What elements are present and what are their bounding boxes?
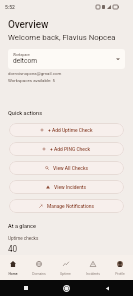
- staticText: Incidents: [86, 272, 100, 276]
- button[interactable]: Uptime: [52, 255, 79, 280]
- staticText: Uptime: [60, 272, 71, 276]
- button[interactable]: Back: [103, 284, 111, 292]
- staticText: dornvisnopcea@gmail.com: [8, 71, 62, 76]
- staticText: Home: [8, 272, 18, 276]
- button[interactable]: Home: [62, 284, 71, 293]
- staticText: Profile: [115, 272, 125, 276]
- button[interactable]: Incidents: [79, 255, 106, 280]
- staticText: Welcome back, Flavius Nopcea: [8, 33, 116, 42]
- button[interactable]: Recent apps: [22, 284, 30, 292]
- staticText: deltcom: [13, 57, 37, 65]
- button[interactable]: Profile: [106, 255, 133, 280]
- staticText: Uptime checks: [8, 236, 39, 241]
- button[interactable]: View Incidents: [9, 180, 124, 194]
- staticText: View All Checks: [53, 165, 88, 171]
- button[interactable]: Manage Notifications: [9, 199, 124, 213]
- button[interactable]: + Add Uptime Check: [9, 123, 124, 137]
- staticText: 40: [8, 244, 18, 254]
- staticText: + Add PING Check: [50, 146, 91, 152]
- staticText: Domains: [32, 272, 46, 276]
- staticText: + Add Uptime Check: [48, 127, 93, 133]
- button[interactable]: Domains: [26, 255, 52, 280]
- staticText: At a glance: [8, 223, 36, 230]
- staticText: Workspace: [13, 53, 30, 57]
- button[interactable]: Workspace: [8, 49, 125, 69]
- button[interactable]: + Add PING Check: [9, 142, 124, 156]
- staticText: Overview: [8, 19, 49, 31]
- staticText: Manage Notifications: [47, 203, 94, 209]
- staticText: View Incidents: [54, 184, 87, 190]
- button[interactable]: Home: [0, 255, 26, 280]
- staticText: Quick actions: [8, 110, 43, 117]
- staticText: 5:52: [5, 4, 15, 10]
- staticText: Workspaces available: 5: [8, 78, 55, 83]
- button[interactable]: View All Checks: [9, 161, 124, 175]
